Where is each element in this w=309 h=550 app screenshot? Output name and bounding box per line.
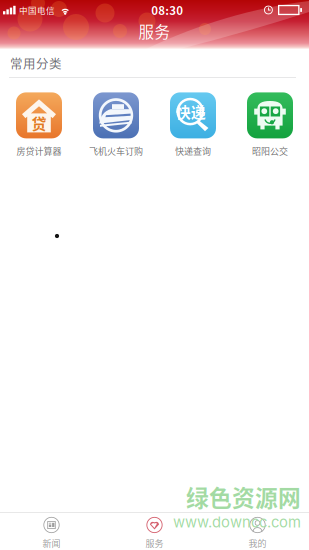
staticText: 绿色资源网 [186, 480, 301, 513]
staticText: 08:30 [151, 2, 183, 18]
staticText: 房贷计算器 [16, 144, 61, 157]
staticText: 快递 [176, 101, 206, 122]
staticText: 飞机火车订购 [89, 144, 143, 157]
staticText: 贷 [31, 112, 46, 134]
staticText: 我的 [248, 536, 266, 549]
staticText: 昭阳公交 [252, 144, 288, 157]
staticText: 快递查询 [175, 144, 211, 157]
staticText: www.downcc.com [173, 513, 301, 531]
button[interactable]: 服务 [103, 516, 206, 550]
button[interactable]: 昭阳公交 [231, 92, 308, 158]
button[interactable]: 飞机火车订购 [77, 92, 154, 158]
staticText: 服务 [138, 20, 170, 42]
staticText: 服务 [145, 536, 163, 549]
button[interactable]: 贷 [0, 92, 77, 158]
staticText: 中国电信 [19, 4, 55, 16]
button[interactable]: 快递 [154, 92, 231, 158]
staticText: 新闻 [42, 536, 60, 549]
button[interactable]: 新闻 [0, 516, 103, 550]
staticText: 常用分类 [10, 54, 62, 72]
button[interactable]: 我的 [206, 516, 309, 550]
